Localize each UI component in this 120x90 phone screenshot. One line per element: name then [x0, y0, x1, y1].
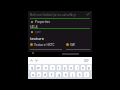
- button[interactable]: o: [81, 65, 85, 70]
- other: Confirm: [86, 12, 90, 16]
- button[interactable]: qwe: [31, 30, 89, 34]
- button[interactable]: t: [57, 65, 61, 70]
- staticText: y: [64, 66, 66, 70]
- staticText: h: [65, 73, 67, 77]
- button[interactable]: u: [69, 65, 73, 70]
- button[interactable]: Texture HXTC: [30, 42, 62, 50]
- staticText: o: [82, 66, 84, 70]
- button[interactable]: GIF: [83, 59, 90, 63]
- staticText: texture: [30, 36, 45, 41]
- other: Undo: [30, 59, 33, 62]
- staticText: j: [72, 73, 73, 77]
- button[interactable]: [4]-4: [30, 24, 90, 29]
- staticText: Before/doble/jam+rahaNcjr: [30, 12, 86, 17]
- button[interactable]: Before/doble/jam+rahaNcjr: [30, 12, 90, 19]
- button[interactable]: e: [43, 65, 48, 70]
- staticText: GIF: [84, 59, 89, 63]
- staticText: a: [32, 73, 34, 77]
- button[interactable]: j: [70, 72, 75, 77]
- staticText: q: [31, 66, 33, 70]
- staticText: i: [77, 66, 78, 70]
- button[interactable]: h: [63, 72, 68, 77]
- staticText: SW: [70, 42, 75, 46]
- button[interactable]: s: [37, 72, 41, 77]
- button[interactable]: k: [77, 72, 82, 77]
- staticText: l: [86, 73, 87, 77]
- button[interactable]: q: [29, 65, 34, 70]
- staticText: w: [37, 66, 40, 70]
- button[interactable]: Properties: [31, 20, 89, 24]
- button[interactable]: d: [43, 72, 47, 77]
- staticText: s: [38, 73, 40, 77]
- other: Redo: [35, 59, 38, 62]
- staticText: d: [44, 73, 46, 77]
- staticText: Texture HXTC: [34, 42, 55, 46]
- button[interactable]: f: [49, 72, 54, 77]
- staticText: k: [79, 73, 81, 77]
- staticText: g: [58, 73, 60, 77]
- button[interactable]: SW: [66, 42, 90, 50]
- button[interactable]: p: [87, 65, 91, 70]
- staticText: u: [70, 66, 72, 70]
- staticText: e: [45, 66, 47, 70]
- staticText: r: [52, 66, 54, 70]
- staticText: t: [58, 66, 60, 70]
- button[interactable]: r: [50, 65, 55, 70]
- button[interactable]: g: [56, 72, 61, 77]
- staticText: Properties: [35, 20, 51, 24]
- staticText: f: [51, 73, 53, 77]
- button[interactable]: i: [75, 65, 79, 70]
- button[interactable]: a: [31, 72, 35, 77]
- staticText: p: [88, 66, 90, 70]
- staticText: [4]-4: [30, 24, 38, 29]
- button[interactable]: y: [63, 65, 67, 70]
- button[interactable]: l: [84, 72, 89, 77]
- button[interactable]: w: [36, 65, 41, 70]
- staticText: qwe: [35, 30, 42, 34]
